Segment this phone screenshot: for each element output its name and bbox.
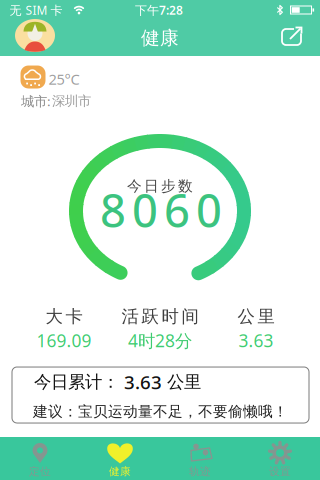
button[interactable]: 设置 <box>245 440 315 478</box>
staticText: 健康 <box>109 465 131 478</box>
staticText: 25°C <box>48 69 79 89</box>
staticText: 设置 <box>269 465 291 478</box>
staticText: 建议：宝贝运动量不足，不要偷懒哦！ <box>33 402 288 420</box>
button[interactable]: 健康 <box>85 440 155 478</box>
staticText: 定位 <box>29 465 51 478</box>
staticText: 今日累计： <box>34 371 124 393</box>
staticText: 公里 <box>162 371 201 393</box>
button[interactable]: 定位 <box>5 440 75 478</box>
staticText: 深圳市 <box>52 93 91 109</box>
staticText: 169.09 <box>36 329 91 352</box>
button[interactable]: 轨迹 <box>165 440 235 478</box>
staticText: 大卡 <box>45 306 82 327</box>
button[interactable]: Profile <box>15 19 55 52</box>
button[interactable]: Share <box>281 25 305 47</box>
staticText: 3.63 <box>124 370 162 394</box>
staticText: 无 SIM 卡 <box>9 2 62 18</box>
staticText: 4时28分 <box>128 329 192 352</box>
staticText: 下午7:28 <box>135 2 183 18</box>
staticText: 今日步数 <box>127 177 193 195</box>
staticText: 活跃时间 <box>121 306 198 327</box>
button[interactable]: Weather <box>20 65 45 88</box>
staticText: 公里 <box>237 306 274 327</box>
staticText: 轨迹 <box>189 465 211 478</box>
staticText: 城市: <box>21 92 51 110</box>
button[interactable]: 今日累计： <box>12 367 309 423</box>
staticText: 健康 <box>141 26 179 49</box>
staticText: 8060 <box>100 181 222 239</box>
staticText: 3.63 <box>238 329 273 352</box>
